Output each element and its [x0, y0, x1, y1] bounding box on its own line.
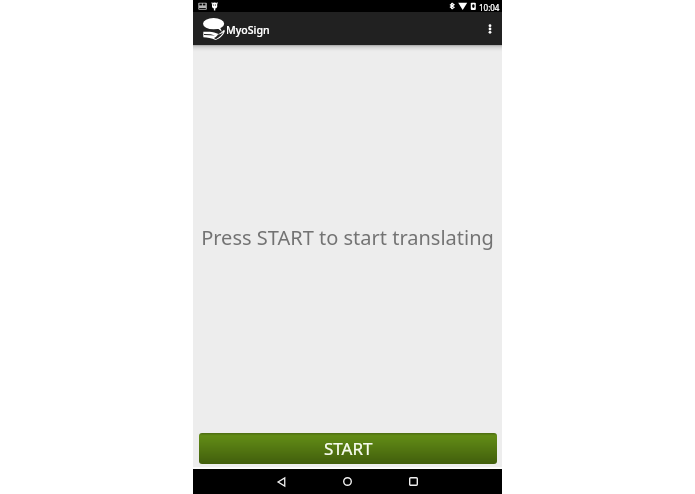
button[interactable]: START: [199, 433, 497, 464]
staticText: MyoSign: [226, 23, 270, 37]
staticText: Press START to start translating: [201, 224, 494, 251]
button[interactable]: More options: [477, 12, 503, 45]
staticText: START: [324, 437, 373, 460]
button[interactable]: Back: [267, 469, 296, 494]
button[interactable]: Home: [333, 469, 362, 494]
staticText: 10:04: [479, 2, 500, 13]
button[interactable]: Recent apps: [399, 469, 428, 494]
